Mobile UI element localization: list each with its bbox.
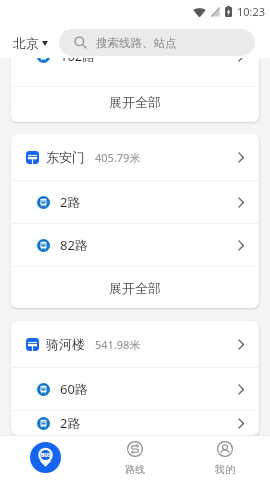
button[interactable]: 我的: [180, 436, 270, 480]
staticText: 102路: [60, 58, 96, 65]
staticText: 展开全部: [109, 94, 161, 110]
staticText: 路线: [125, 463, 145, 476]
staticText: BUS: [41, 452, 51, 459]
staticText: 搜索线路、站点: [96, 36, 177, 50]
staticText: 北京: [13, 35, 39, 51]
staticText: 2路: [60, 193, 81, 211]
staticText: 541.98米: [95, 337, 141, 352]
button[interactable]: 搜索线路、站点: [59, 29, 255, 56]
button[interactable]: 展开全部: [11, 267, 259, 308]
button[interactable]: 展开全部: [11, 87, 259, 108]
staticText: 60路: [60, 380, 88, 398]
button[interactable]: Bus home: [0, 436, 90, 480]
staticText: 82路: [60, 236, 88, 254]
button[interactable]: 60路: [11, 368, 259, 410]
button[interactable]: 102路: [11, 58, 259, 86]
staticText: 2路: [60, 414, 81, 432]
staticText: 我的: [215, 463, 235, 476]
staticText: 骑河楼: [46, 336, 85, 352]
button[interactable]: 82路: [11, 224, 259, 266]
button[interactable]: 2路: [11, 181, 259, 223]
staticText: 展开全部: [109, 280, 161, 296]
button[interactable]: 北京: [13, 35, 48, 51]
button[interactable]: 路线: [90, 436, 180, 480]
button[interactable]: 东安门: [11, 134, 259, 180]
staticText: 405.79米: [95, 150, 141, 165]
button[interactable]: 2路: [11, 411, 259, 435]
staticText: 东安门: [46, 149, 85, 165]
button[interactable]: 骑河楼: [11, 321, 259, 367]
staticText: 10:23: [237, 4, 266, 19]
